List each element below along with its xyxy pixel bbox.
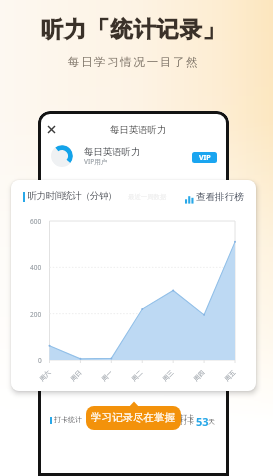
staticText: VIP <box>199 153 211 163</box>
staticText: 周五 <box>223 368 238 383</box>
staticText: 打卡 <box>180 417 194 426</box>
button[interactable]: 查看排行榜 <box>185 193 242 205</box>
staticText: 打卡 <box>180 413 194 422</box>
staticText: 学习记录尽在掌握 <box>91 411 175 424</box>
staticText: 天 <box>208 417 215 426</box>
staticText: 周六 <box>38 368 53 383</box>
staticText: 每日英语听力 <box>84 146 141 158</box>
staticText: 600 <box>30 217 42 226</box>
button[interactable]: 学习记录尽在掌握 <box>86 406 181 430</box>
button[interactable] <box>38 143 229 171</box>
staticText: 0 <box>38 356 42 365</box>
staticText: 每日学习情况一目了然 <box>0 55 270 69</box>
staticText: 听力「统计记录」 <box>0 16 270 44</box>
staticText: 200 <box>30 310 42 319</box>
staticText: 周二 <box>130 368 145 383</box>
staticText: 查看排行榜 <box>196 191 244 203</box>
staticText: 打卡统计 <box>54 415 82 424</box>
staticText: 周一 <box>100 368 115 383</box>
staticText: 听力时间统计（分钟） <box>28 190 117 202</box>
staticText: 周日 <box>69 368 84 383</box>
staticText: 最近一周数据 <box>128 193 167 201</box>
staticText: 每日英语听力 <box>110 124 167 136</box>
button[interactable]: 关闭 <box>43 121 59 137</box>
staticText: 400 <box>30 263 42 272</box>
staticText: 53 <box>196 414 209 429</box>
button[interactable]: VIP <box>192 152 217 163</box>
staticText: 周三 <box>161 368 176 383</box>
staticText: VIP用户 <box>84 157 108 166</box>
staticText: 周四 <box>192 368 207 383</box>
